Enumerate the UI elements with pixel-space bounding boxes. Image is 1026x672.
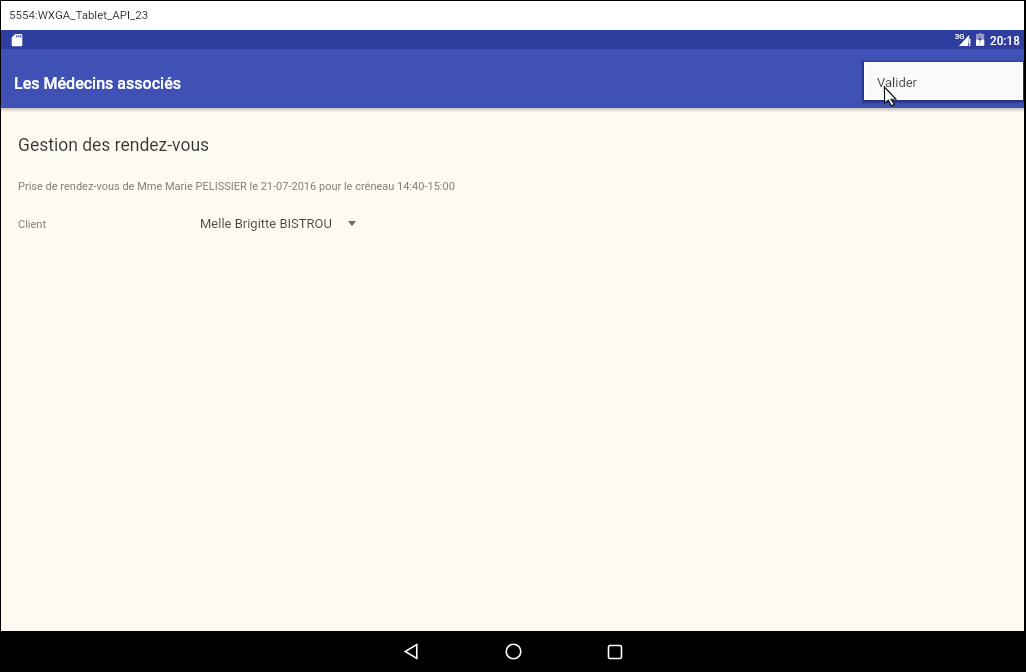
button[interactable]: Melle Brigitte BISTROU bbox=[200, 208, 356, 236]
staticText: Melle Brigitte BISTROU bbox=[200, 216, 332, 231]
button[interactable]: Recent apps bbox=[564, 631, 666, 672]
button[interactable]: Back bbox=[360, 631, 462, 672]
button[interactable]: Valider bbox=[864, 62, 1023, 100]
staticText: Valider bbox=[877, 75, 918, 90]
button[interactable]: Home bbox=[462, 631, 564, 672]
staticText: 20:18 bbox=[990, 32, 1020, 48]
staticText: Les Médecins associés bbox=[14, 74, 181, 93]
staticText: 3G bbox=[955, 32, 965, 41]
staticText: Gestion des rendez-vous bbox=[18, 135, 210, 156]
staticText: 5554:WXGA_Tablet_API_23 bbox=[9, 8, 149, 21]
staticText: Prise de rendez-vous de Mme Marie PELISS… bbox=[18, 180, 455, 193]
staticText: Client bbox=[18, 218, 47, 231]
